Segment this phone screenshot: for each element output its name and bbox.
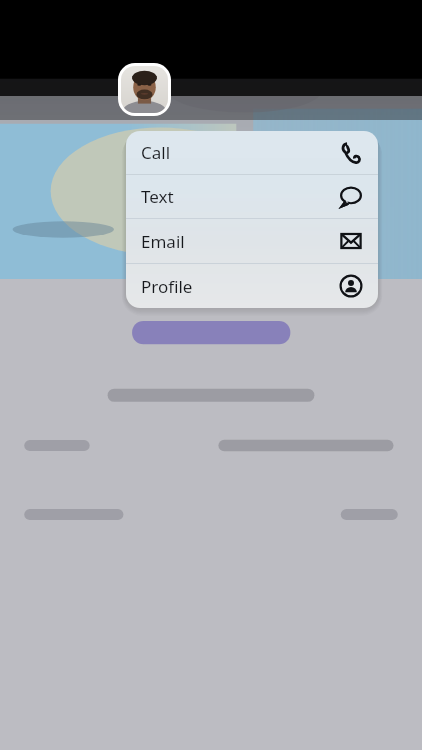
staticText: Profile — [141, 275, 193, 298]
staticText: Text — [141, 185, 174, 208]
staticText: Call — [141, 141, 171, 164]
button[interactable]: Call — [126, 131, 378, 174]
button[interactable]: Text — [126, 175, 378, 218]
button[interactable]: Profile — [126, 264, 378, 308]
button[interactable]: Contact photo — [121, 66, 168, 113]
button[interactable]: Email — [126, 219, 378, 263]
staticText: Email — [141, 230, 185, 253]
